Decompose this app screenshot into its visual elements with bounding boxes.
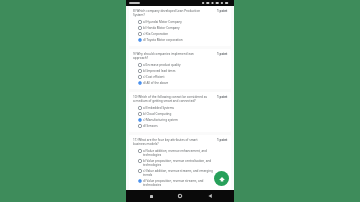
button[interactable]: b) Value proposition, revenue centralisa… [133, 158, 228, 168]
staticText: d) All of the above [143, 81, 169, 85]
staticText: approach? [133, 56, 149, 60]
staticText: business models? [133, 142, 159, 146]
button[interactable]: c) Cost efficient [133, 74, 228, 80]
staticText: b) Value proposition, revenue centralisa… [143, 159, 212, 163]
staticText: 1 point [217, 52, 228, 56]
button[interactable]: d) All of the above [133, 80, 228, 86]
button[interactable]: b) Cloud Computing [133, 111, 228, 117]
button[interactable]: a) Increase product quality [133, 62, 228, 68]
staticText: a) Embedded Systems [143, 106, 175, 110]
staticText: c) Kia Corporation [143, 32, 169, 36]
staticText: c) Value addition, revenue streams, and … [143, 169, 213, 173]
button[interactable]: 10) Which of the following cannot be con… [129, 92, 231, 132]
staticText: a) Hyundai Motor Company [143, 20, 182, 24]
button[interactable]: Back [205, 191, 215, 201]
button[interactable]: c) Kia Corporation [133, 31, 228, 37]
staticText: b) Improved lead times [143, 69, 176, 73]
button[interactable]: Recents [146, 191, 156, 201]
staticText: 9) Why should companies implement lean [133, 52, 194, 56]
button[interactable]: c) Value addition, revenue streams, and … [133, 168, 228, 178]
staticText: c) Manufacturing system [143, 118, 178, 122]
staticText: c) Cost efficient [143, 75, 165, 79]
staticText: System? [133, 13, 145, 17]
staticText: d) Value proposition, revenue streams, a… [143, 179, 204, 183]
staticText: 1 point [217, 95, 228, 99]
staticText: b) Honda Motor Company [143, 26, 180, 30]
button[interactable]: 11) What are the four key attributes of … [129, 135, 231, 190]
staticText: technologies [143, 153, 162, 157]
staticText: 11) What are the four key attributes of … [133, 138, 198, 142]
button[interactable]: Home [175, 191, 185, 201]
staticText: 10) Which of the following cannot be con… [133, 95, 207, 99]
staticText: d) Sensors [143, 124, 158, 128]
staticText: a) Value addition, revenue enhancement, … [143, 149, 207, 153]
staticText: 8) Which company developed Lean Producti… [133, 9, 201, 13]
button[interactable]: d) Value proposition, revenue streams, a… [133, 178, 228, 187]
button[interactable]: a) Value addition, revenue enhancement, … [133, 148, 228, 158]
button[interactable]: 8) Which company developed Lean Producti… [129, 6, 231, 46]
staticText: 1 point [217, 9, 228, 13]
button[interactable]: a) Hyundai Motor Company [133, 19, 228, 25]
button[interactable]: 9) Why should companies implement lean [129, 49, 231, 89]
button[interactable]: b) Improved lead times [133, 68, 228, 74]
staticText: 1 point [217, 138, 228, 142]
staticText: technologies [143, 163, 162, 167]
button[interactable]: c) Manufacturing system [133, 117, 228, 123]
button[interactable]: a) Embedded Systems [133, 105, 228, 111]
button[interactable]: Scroll to top [214, 171, 229, 186]
staticText: trends [143, 173, 153, 177]
staticText: d) Toyota Motor corporation [143, 38, 183, 42]
staticText: b) Cloud Computing [143, 112, 172, 116]
staticText: a) Increase product quality [143, 63, 181, 67]
staticText: a medium of getting smart and connected? [133, 99, 196, 103]
button[interactable]: d) Sensors [133, 123, 228, 129]
button[interactable]: d) Toyota Motor corporation [133, 37, 228, 43]
staticText: technologies [143, 183, 162, 186]
button[interactable]: b) Honda Motor Company [133, 25, 228, 31]
